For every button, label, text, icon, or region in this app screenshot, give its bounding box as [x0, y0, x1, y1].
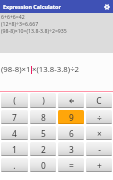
- staticText: +: [97, 160, 102, 171]
- staticText: 5: [41, 128, 46, 139]
- button[interactable]: ): [30, 93, 56, 108]
- button[interactable]: 0: [30, 158, 56, 172]
- button[interactable]: 3: [58, 142, 84, 156]
- button[interactable]: 6: [58, 126, 84, 140]
- staticText: (: [13, 95, 16, 106]
- button[interactable]: Backspace: [58, 93, 84, 108]
- staticText: =: [69, 160, 74, 171]
- button[interactable]: 2: [30, 142, 56, 156]
- button[interactable]: 7: [1, 110, 28, 124]
- staticText: (98-8)×10=(13.8-3.8)÷2=935: [1, 27, 67, 34]
- staticText: 6: [69, 128, 74, 139]
- staticText: 3: [69, 144, 74, 155]
- button[interactable]: 9: [58, 110, 84, 124]
- staticText: 2: [41, 144, 46, 155]
- staticText: ÷: [97, 112, 102, 123]
- staticText: 8: [41, 112, 46, 123]
- staticText: .: [13, 160, 16, 171]
- staticText: (12+8)÷3=6.667: [1, 20, 39, 27]
- other: Backspace: [69, 99, 74, 103]
- button[interactable]: ÷: [86, 110, 112, 124]
- staticText: -: [98, 144, 101, 155]
- staticText: 6+6+6=42: [1, 13, 25, 20]
- staticText: 4: [12, 128, 17, 139]
- staticText: 1: [12, 144, 17, 155]
- button[interactable]: 8: [30, 110, 56, 124]
- button[interactable]: 4: [1, 126, 28, 140]
- button[interactable]: Settings: [101, 0, 113, 13]
- button[interactable]: ×: [86, 126, 112, 140]
- staticText: C: [96, 95, 102, 106]
- button[interactable]: 5: [30, 126, 56, 140]
- button[interactable]: C: [86, 93, 112, 108]
- staticText: (98-8)×1: [1, 64, 31, 75]
- button[interactable]: +: [86, 158, 112, 172]
- button[interactable]: -: [86, 142, 112, 156]
- staticText: 0: [41, 160, 46, 171]
- staticText: Expression Calculator: [3, 3, 101, 10]
- staticText: 9: [69, 112, 74, 123]
- staticText: ×: [97, 128, 102, 139]
- button[interactable]: 1: [1, 142, 28, 156]
- button[interactable]: .: [1, 158, 28, 172]
- button[interactable]: (: [1, 93, 28, 108]
- staticText: 7: [12, 112, 17, 123]
- button[interactable]: =: [58, 158, 84, 172]
- staticText: ×(13.8-3.8)÷2: [32, 64, 80, 75]
- staticText: ): [42, 95, 45, 106]
